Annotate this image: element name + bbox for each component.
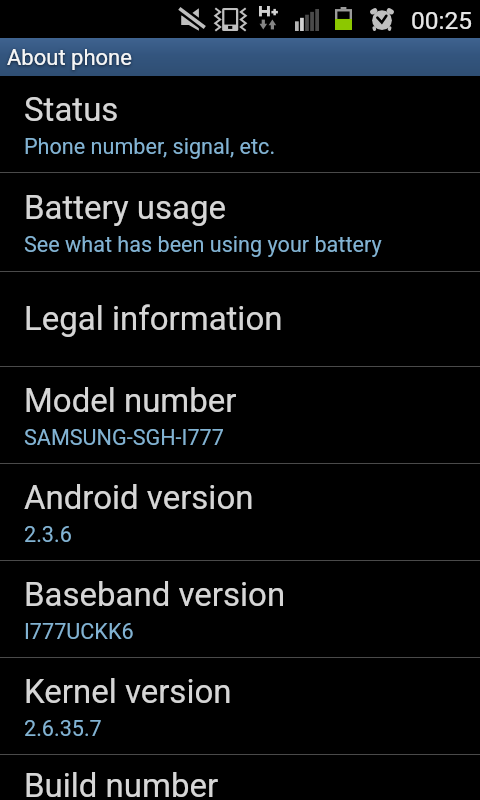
button[interactable]: Model number: [0, 366, 480, 463]
staticText: 2.6.35.7: [24, 716, 102, 741]
staticText: SAMSUNG-SGH-I777: [24, 425, 224, 450]
button[interactable]: Status: [0, 76, 480, 172]
staticText: Legal information: [24, 299, 283, 338]
staticText: Status: [24, 90, 119, 129]
staticText: Kernel version: [24, 672, 232, 711]
staticText: Build number: [24, 766, 219, 800]
staticText: About phone: [7, 45, 132, 71]
button[interactable]: Legal information: [0, 271, 480, 366]
button[interactable]: Kernel version: [0, 657, 480, 754]
staticText: Android version: [24, 478, 254, 517]
button[interactable]: Android version: [0, 463, 480, 560]
button[interactable]: Baseband version: [0, 560, 480, 657]
staticText: Baseband version: [24, 575, 286, 614]
staticText: See what has been using your battery: [24, 232, 382, 257]
staticText: Model number: [24, 381, 237, 420]
staticText: I777UCKK6: [24, 619, 134, 644]
button[interactable]: Build number: [0, 754, 480, 800]
button[interactable]: Battery usage: [0, 172, 480, 271]
staticText: Battery usage: [24, 188, 227, 227]
staticText: 2.3.6: [24, 522, 72, 547]
staticText: Phone number, signal, etc.: [24, 134, 276, 159]
staticText: 00:25: [411, 6, 473, 35]
